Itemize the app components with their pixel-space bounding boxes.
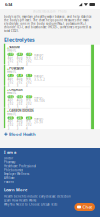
button[interactable]: Health benefits include early disease de… [4, 195, 71, 198]
staticText: Feb 2024 [26, 98, 32, 109]
button[interactable]: Employer Wellness [4, 172, 29, 176]
staticText: Doctor [4, 156, 13, 160]
staticText: 4.4 [17, 74, 22, 77]
button[interactable]: Why You Need to Choose LifeLab Tests [4, 203, 57, 206]
staticText: CHLORIDE [9, 88, 22, 91]
staticText: + [7, 45, 9, 50]
button[interactable]: Healthcare Professional [4, 164, 36, 168]
staticText: Learn More [4, 187, 27, 192]
staticText: Aug 2023 [17, 56, 23, 66]
staticText: Range: 3.5-5.2 [34, 74, 45, 82]
button[interactable]: Patient [4, 180, 14, 184]
staticText: 141 [17, 53, 23, 56]
staticText: 104 [17, 95, 23, 98]
staticText: 102 [8, 95, 14, 98]
staticText: Apr 2023 [8, 77, 14, 88]
button[interactable]: Blood Health [0, 129, 36, 139]
staticText: Range: 02-94 [34, 53, 44, 60]
button[interactable]: Pharmacy [4, 160, 15, 164]
staticText: 101 [26, 95, 32, 98]
staticText: Electrolytes [4, 36, 35, 43]
staticText: Chat [82, 204, 92, 210]
staticText: Apr 2023 [8, 119, 14, 130]
staticText: mmol/L [7, 49, 16, 52]
staticText: Feb 2024 [26, 56, 32, 66]
staticText: shutterstock.com · Photo [33, 10, 67, 13]
staticText: Learn How Health Works [4, 199, 36, 202]
staticText: Aug 2023 [17, 119, 23, 130]
staticText: Apr 2023 [8, 56, 14, 66]
staticText: Apr 2023 [8, 98, 14, 109]
staticText: Range: 98-106 [34, 96, 45, 103]
staticText: mmol/L [7, 91, 16, 95]
button[interactable]: Affiliate [4, 176, 15, 180]
staticText: + [7, 108, 9, 113]
staticText: Range: 20-30 [34, 117, 44, 124]
button[interactable]: Learn How Health Works [4, 199, 36, 202]
staticText: Blood Health [9, 131, 36, 137]
staticText: I am a [4, 150, 16, 155]
staticText: 4.1 [27, 74, 32, 77]
staticText: body's cells, maintain a healthy water b… [4, 15, 92, 33]
staticText: 26 [18, 116, 22, 120]
staticText: 6:34 [5, 2, 12, 7]
button[interactable]: Chat [74, 203, 95, 211]
staticText: 25 [9, 116, 13, 120]
button[interactable]: Phlebotomist [4, 168, 23, 172]
staticText: mmol/L [7, 70, 16, 73]
staticText: POTASSIUM [9, 67, 24, 70]
button[interactable]: Doctor [4, 156, 13, 160]
staticText: SODIUM [9, 45, 20, 49]
staticText: Affiliate [4, 176, 15, 180]
staticText: Feb 2024 [26, 119, 32, 130]
staticText: Pharmacy [4, 160, 15, 164]
staticText: Why You Need to Choose LifeLab Tests [4, 203, 57, 206]
staticText: Employer Wellness [4, 172, 29, 176]
staticText: + [7, 87, 9, 92]
staticText: CARBON DIOXIDE [9, 109, 33, 113]
staticText: + [7, 66, 9, 71]
staticText: 139 [8, 53, 14, 56]
staticText: Aug 2023 [17, 98, 23, 109]
staticText: 138 [26, 53, 32, 56]
staticText: Healthcare Professional [4, 164, 36, 168]
staticText: 24 [27, 116, 31, 120]
staticText: Feb 2024 [26, 77, 32, 88]
staticText: Phlebotomist [4, 168, 23, 172]
staticText: Patient [4, 180, 14, 184]
staticText: 4.2 [8, 74, 13, 77]
staticText: mmol/L [7, 112, 16, 116]
staticText: Aug 2023 [17, 77, 23, 88]
staticText: Health benefits include early disease de… [4, 195, 71, 198]
